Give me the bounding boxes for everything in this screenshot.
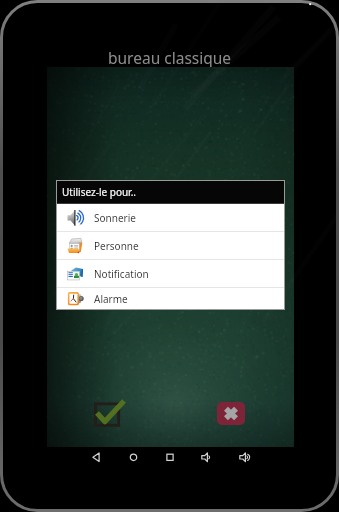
button[interactable]: Back xyxy=(86,447,108,471)
button[interactable]: Personne xyxy=(57,232,284,259)
button[interactable]: Cancel xyxy=(217,402,245,425)
staticText: Personne xyxy=(94,239,139,253)
button[interactable]: Home xyxy=(123,447,145,471)
staticText: bureau classique xyxy=(108,47,232,67)
button[interactable]: Volume up xyxy=(234,447,256,471)
button[interactable]: Alarme xyxy=(57,288,284,309)
staticText: Sonnerie xyxy=(94,211,136,225)
button[interactable]: Sonnerie xyxy=(57,204,284,231)
button[interactable]: Notification xyxy=(57,260,284,287)
button[interactable]: Recent apps xyxy=(159,447,181,471)
staticText: Notification xyxy=(94,267,149,281)
button[interactable]: Volume down xyxy=(196,447,218,471)
staticText: Alarme xyxy=(94,292,128,306)
staticText: Utilisez-le pour.. xyxy=(62,185,136,199)
button[interactable]: OK xyxy=(94,400,124,427)
